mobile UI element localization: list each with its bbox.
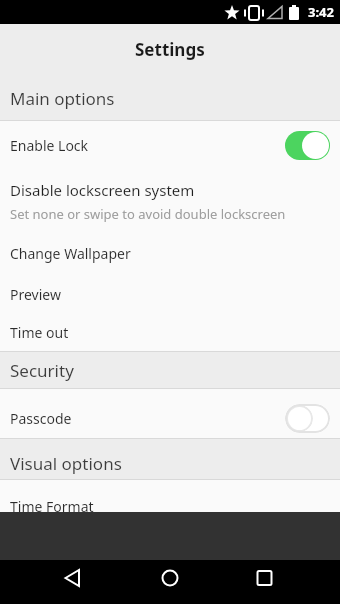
button[interactable]: Main options (0, 76, 340, 121)
button[interactable]: Time out (0, 314, 340, 351)
button[interactable]: Change Wallpaper (0, 232, 340, 275)
staticText: Enable Lock (10, 136, 89, 155)
staticText: Time Format (10, 497, 94, 516)
staticText: Main options (10, 87, 115, 110)
button[interactable]: Time Format (0, 480, 340, 533)
button[interactable]: Preview (0, 275, 340, 314)
button[interactable]: Passcode (0, 394, 340, 442)
staticText: Change Wallpaper (10, 244, 131, 263)
staticText: Time out (10, 323, 69, 342)
button[interactable]: Enable Lock (0, 121, 340, 170)
button[interactable] (285, 131, 330, 160)
staticText: Security (10, 359, 74, 382)
button[interactable] (285, 404, 330, 433)
staticText: Set none or swipe to avoid double locksc… (10, 205, 286, 223)
staticText: Preview (10, 285, 61, 304)
staticText: Passcode (10, 409, 72, 428)
button[interactable]: Disable lockscreen system (0, 180, 340, 223)
staticText: Settings (135, 38, 205, 61)
button[interactable] (50, 568, 95, 604)
staticText: Disable lockscreen system (10, 180, 195, 200)
staticText: Visual options (10, 452, 122, 475)
staticText: 3:42 (308, 3, 334, 21)
